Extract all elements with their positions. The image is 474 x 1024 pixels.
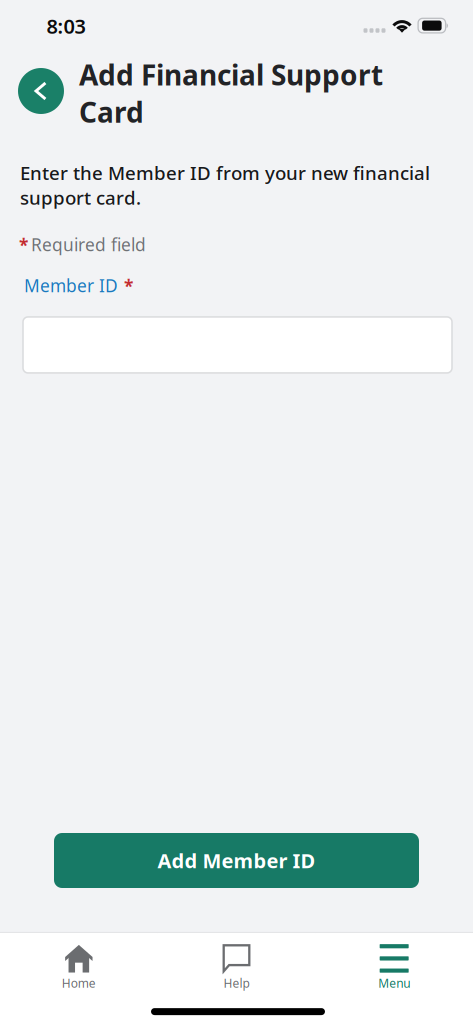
button[interactable]: Back	[18, 68, 64, 114]
staticText: *	[124, 274, 133, 297]
staticText: Menu	[378, 975, 410, 991]
button[interactable]: Help	[158, 933, 315, 1001]
staticText: Add Financial Support Card	[79, 56, 383, 130]
button[interactable]: Home	[0, 933, 158, 1001]
button[interactable]: Add Member ID	[54, 833, 419, 888]
staticText: *	[19, 233, 28, 256]
staticText: Home	[62, 975, 96, 991]
button[interactable]: Menu	[315, 933, 473, 1001]
staticText: Member ID	[24, 274, 118, 297]
staticText: Add Member ID	[157, 847, 315, 874]
staticText: Help	[223, 975, 249, 991]
staticText: Enter the Member ID from your new financ…	[20, 160, 430, 210]
staticText: 8:03	[46, 13, 85, 39]
staticText: Required field	[31, 233, 146, 256]
